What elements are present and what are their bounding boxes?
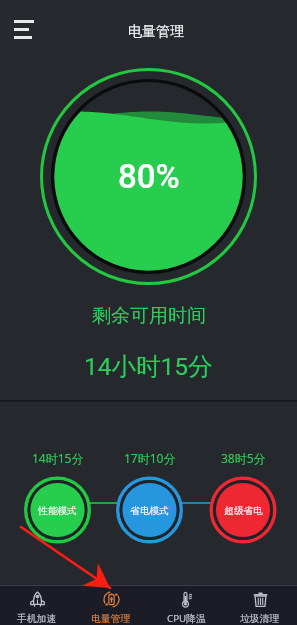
button[interactable]: 电量管理	[74, 586, 148, 625]
button[interactable]: 性能模式	[24, 477, 91, 544]
staticText: 80%	[118, 157, 180, 196]
staticText: 38时5分	[221, 450, 266, 466]
staticText: 14小时15分	[84, 351, 213, 381]
staticText: 14时15分	[32, 450, 84, 466]
staticText: 性能模式	[38, 505, 77, 517]
staticText: 17时10分	[124, 450, 176, 466]
staticText: 手机加速	[17, 613, 57, 625]
button[interactable]: 超级省电	[210, 477, 277, 544]
staticText: 电量管理	[128, 23, 184, 41]
button[interactable]: 手机加速	[0, 586, 74, 625]
staticText: 垃圾清理	[240, 613, 280, 625]
button[interactable]: 垃圾清理	[223, 586, 297, 625]
button[interactable]: CPU降温	[149, 586, 223, 625]
button[interactable]: Menu	[4, 9, 44, 49]
staticText: 电量管理	[91, 613, 131, 625]
staticText: 省电模式	[130, 505, 169, 517]
staticText: 剩余可用时间	[92, 304, 206, 328]
staticText: 超级省电	[224, 505, 263, 517]
button[interactable]: 省电模式	[116, 477, 183, 544]
staticText: CPU降温	[167, 612, 206, 625]
